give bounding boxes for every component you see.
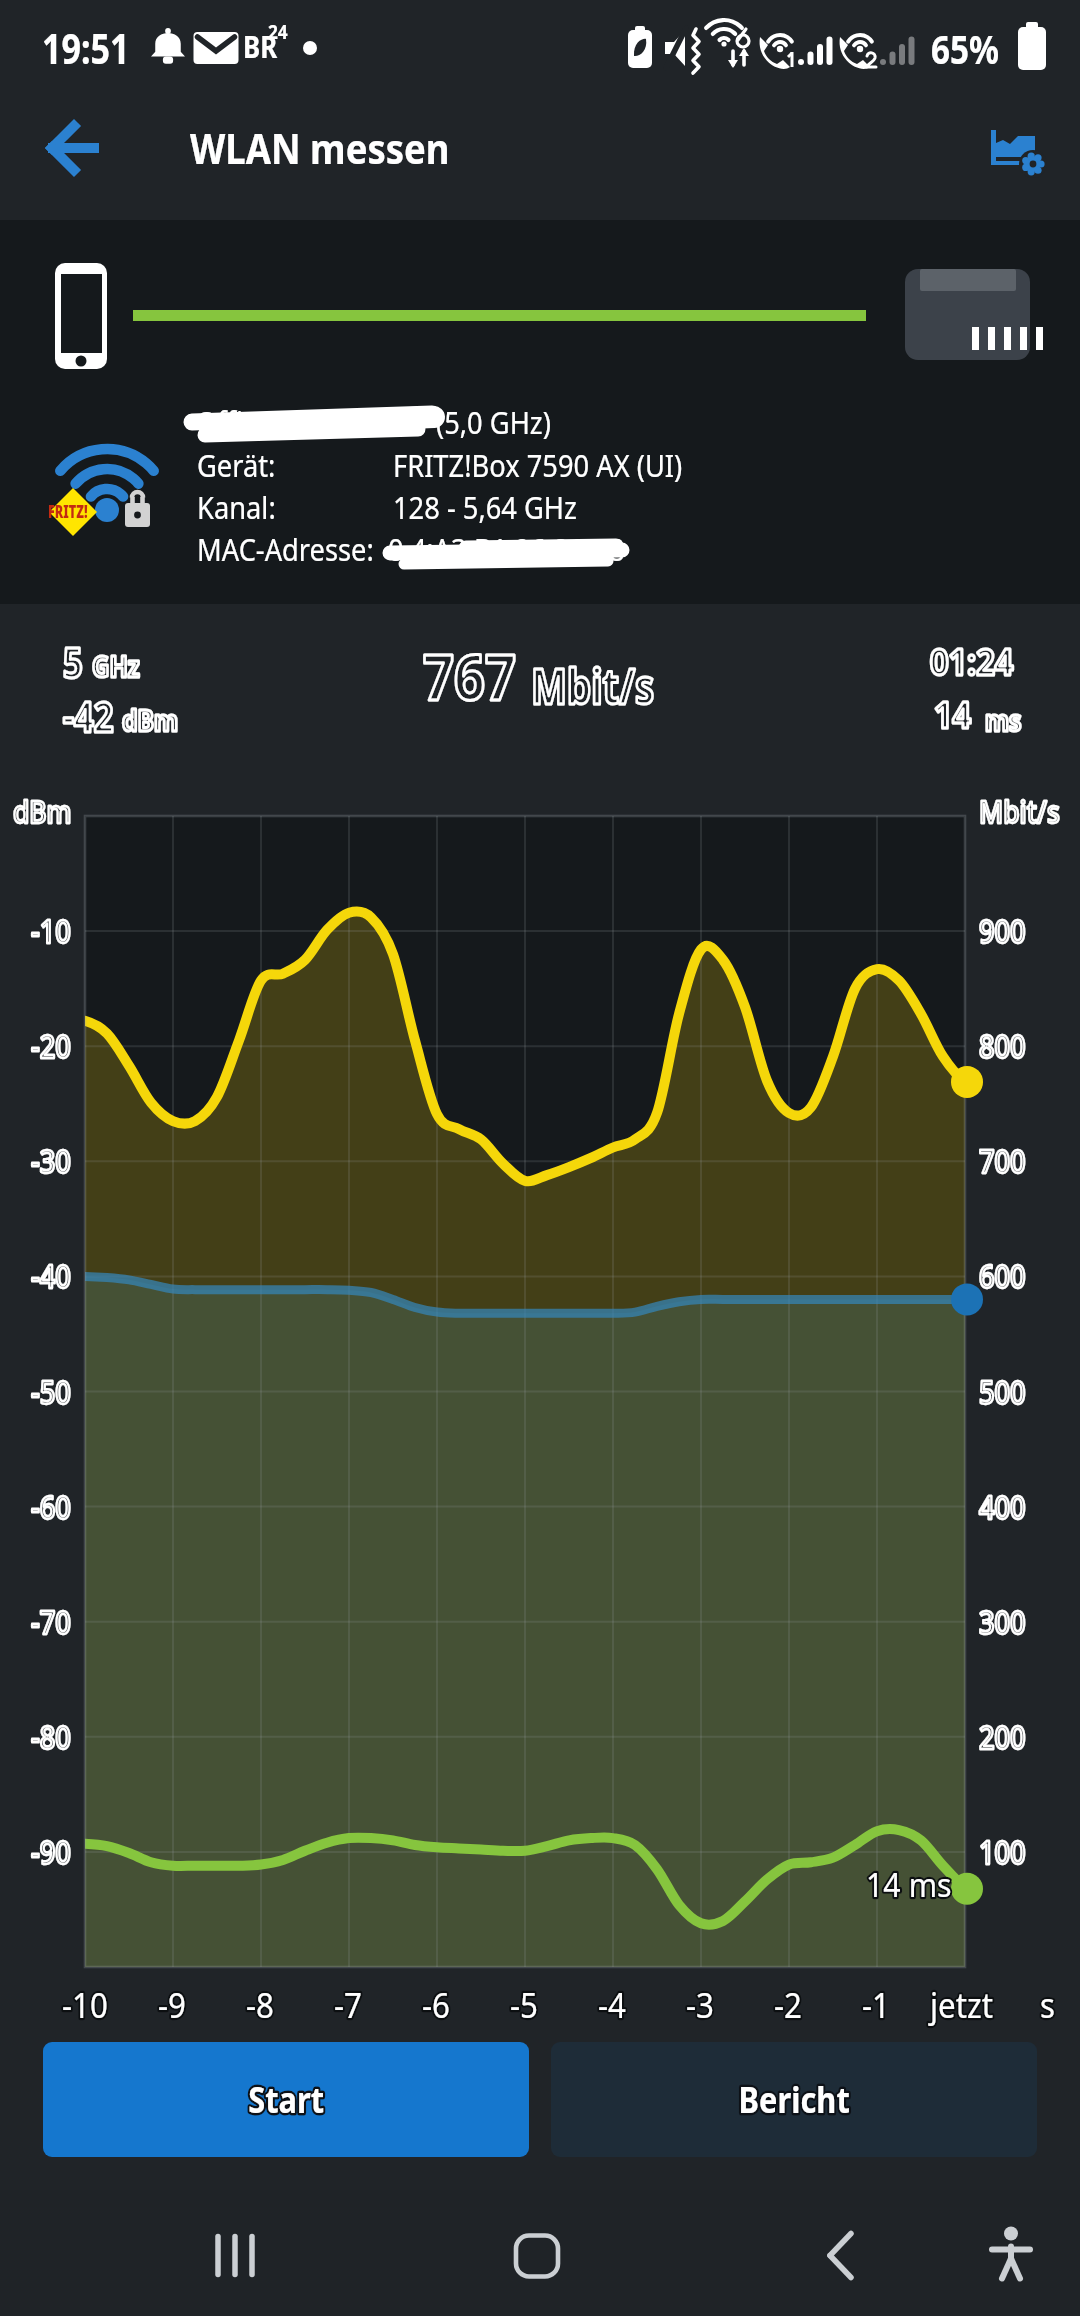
staticText: jetzt xyxy=(930,1982,993,2028)
staticText: -10 xyxy=(62,1982,108,2028)
staticText: Bericht xyxy=(739,2076,850,2124)
staticText: s xyxy=(1040,1982,1056,2028)
staticText: Kanal: xyxy=(197,486,276,528)
staticText: jetzt xyxy=(930,1982,993,2028)
staticText: -90 xyxy=(31,1830,71,1874)
staticText: Mbit/s xyxy=(531,652,655,719)
staticText: 24 xyxy=(268,18,288,45)
staticText: -2 xyxy=(774,1982,802,2028)
staticText: ms xyxy=(985,700,1021,739)
staticText: -7 xyxy=(334,1982,362,2028)
staticText: 128 - 5,64 GHz xyxy=(393,486,577,528)
staticText: dBm xyxy=(122,700,178,739)
staticText: 300 xyxy=(979,1600,1026,1644)
staticText: WLAN messen xyxy=(190,120,450,176)
staticText: BR xyxy=(243,26,277,67)
staticText: 100 xyxy=(979,1830,1026,1874)
staticText: FRITZ!Box 7590 AX (UI) xyxy=(393,444,682,486)
staticText: -80 xyxy=(31,1715,71,1759)
staticText: -1 xyxy=(862,1982,890,2028)
staticText: -60 xyxy=(31,1485,71,1529)
staticText: -40 xyxy=(31,1254,71,1298)
staticText: Start xyxy=(248,2076,325,2124)
staticText: 14 ms xyxy=(866,1862,952,1907)
button[interactable]: Zurück xyxy=(26,101,120,195)
button[interactable]: Bedienungshilfen xyxy=(950,2190,1076,2316)
staticText: -9 xyxy=(158,1982,186,2028)
staticText: -2 xyxy=(774,1982,802,2028)
staticText: -70 xyxy=(31,1600,71,1644)
staticText: -20 xyxy=(31,1024,71,1068)
button[interactable]: Startseite xyxy=(474,2190,600,2316)
staticText: 800 xyxy=(979,1024,1026,1068)
staticText: Mbit/s xyxy=(979,790,1060,832)
staticText: MAC-Adresse: xyxy=(197,528,374,570)
staticText: FRITZ! xyxy=(48,500,88,523)
button[interactable]: Diagramm-Einstellungen xyxy=(970,108,1050,188)
staticText: 900 xyxy=(979,909,1026,953)
button[interactable]: Zurück xyxy=(779,2190,905,2316)
staticText: 700 xyxy=(979,1139,1026,1183)
staticText: -8 xyxy=(246,1982,274,2028)
staticText: -3 xyxy=(686,1982,714,2028)
staticText: -10 xyxy=(31,909,71,953)
staticText: 600 xyxy=(979,1254,1026,1298)
staticText: -8 xyxy=(246,1982,274,2028)
staticText: -5 xyxy=(510,1982,538,2028)
button[interactable]: Letzte Apps xyxy=(175,2190,301,2316)
staticText: -42 xyxy=(63,688,114,744)
staticText: -4 xyxy=(598,1982,626,2028)
staticText: 14 xyxy=(934,690,972,739)
staticText: -6 xyxy=(422,1982,450,2028)
staticText: 400 xyxy=(979,1485,1026,1529)
staticText: 14 ms xyxy=(866,1862,952,1907)
staticText: Office-FRITZ!Box xyxy=(196,401,407,443)
staticText: -30 xyxy=(31,1139,71,1183)
staticText: 5 xyxy=(63,634,83,690)
staticText: 01:24 xyxy=(930,637,1014,686)
staticText: -9 xyxy=(158,1982,186,2028)
button[interactable]: Start xyxy=(43,2042,529,2157)
button[interactable]: Bericht xyxy=(551,2042,1037,2157)
staticText: 500 xyxy=(979,1370,1026,1414)
staticText: -1 xyxy=(862,1982,890,2028)
staticText: -10 xyxy=(62,1982,108,2028)
staticText: 19:51 xyxy=(42,20,130,76)
staticText: -4 xyxy=(598,1982,626,2028)
staticText: dBm xyxy=(13,790,72,832)
staticText: 65% xyxy=(931,21,999,75)
staticText: Bericht xyxy=(739,2076,850,2124)
staticText: -50 xyxy=(31,1370,71,1414)
staticText: -6 xyxy=(422,1982,450,2028)
staticText: 200 xyxy=(979,1715,1026,1759)
staticText: -7 xyxy=(334,1982,362,2028)
staticText: Start xyxy=(248,2076,325,2124)
staticText: 767 xyxy=(423,633,517,719)
staticText: -3 xyxy=(686,1982,714,2028)
staticText: GHz xyxy=(92,646,140,685)
staticText: Gerät: xyxy=(197,444,276,486)
staticText: s xyxy=(1040,1982,1056,2028)
staticText: (5,0 GHz) xyxy=(436,401,551,443)
staticText: -5 xyxy=(510,1982,538,2028)
staticText: 0 4:A3:B1:96:2C:18 xyxy=(388,528,625,570)
